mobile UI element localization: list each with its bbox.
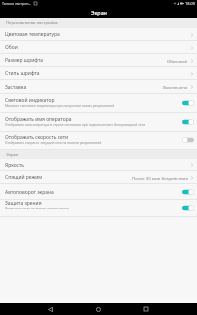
staticText: Выключено: [163, 84, 188, 90]
staticText: Стиль шрифта: [5, 70, 40, 77]
button[interactable]: Световой индикатор: [0, 94, 197, 113]
staticText: Обычный: [167, 58, 188, 64]
button[interactable]: Home: [90, 303, 107, 315]
staticText: Отображать имя оператора: [5, 116, 72, 123]
button[interactable]: Обои: [0, 41, 197, 54]
staticText: Только экстрен...: [2, 1, 32, 6]
button[interactable]: Отображать имя оператора: [0, 113, 197, 132]
button[interactable]: Автоповорот экрана: [0, 184, 197, 200]
staticText: Заставка: [5, 84, 27, 91]
button[interactable]: Размер шрифта: [0, 54, 197, 67]
button[interactable]: Заставка: [0, 80, 197, 94]
staticText: Яркость: [5, 162, 25, 169]
button[interactable]: Цветовая температура: [0, 28, 197, 41]
staticText: Световой индикатор: [5, 97, 55, 104]
staticText: Цветовая температура: [5, 31, 60, 38]
staticText: Спящий режим: [5, 174, 43, 181]
staticText: Включите глаза на время чтения текста: [5, 206, 69, 209]
staticText: Мигание светового индикатора при получен…: [5, 103, 115, 107]
staticText: Автоповорот экрана: [5, 189, 54, 196]
staticText: Отображать скорость текущей сети на пане…: [5, 140, 102, 144]
staticText: Отображать скорость сети: [5, 134, 69, 141]
staticText: Экран: [91, 9, 107, 16]
button[interactable]: Recent apps: [137, 303, 154, 315]
button[interactable]: Спящий режим: [0, 171, 197, 184]
staticText: Защита зрения: [5, 200, 42, 207]
staticText: Экран: [6, 152, 19, 158]
button[interactable]: Отображать скорость сети: [0, 132, 197, 150]
button[interactable]: Яркость: [0, 159, 197, 171]
staticText: Размер шрифта: [5, 57, 43, 64]
staticText: Отображать имя оператора в строке состоя…: [5, 122, 146, 126]
staticText: Обои: [5, 44, 18, 51]
staticText: Персональная настройка: [6, 20, 58, 26]
staticText: 18:09: [185, 1, 195, 6]
button[interactable]: Защита зрения: [0, 200, 197, 217]
button[interactable]: Стиль шрифта: [0, 67, 197, 80]
staticText: После 30 мин бездействия: [132, 175, 188, 181]
button[interactable]: Back: [42, 303, 59, 315]
